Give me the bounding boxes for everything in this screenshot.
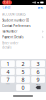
staticText: 6 xyxy=(37,68,40,75)
button[interactable]: 2 xyxy=(16,60,30,67)
staticText: Tax Number xyxy=(2,30,17,33)
staticText: GHI xyxy=(7,75,9,77)
staticText: MNO xyxy=(37,75,40,77)
button[interactable]: 3 xyxy=(31,60,45,67)
button[interactable]: 5 xyxy=(16,68,30,75)
button[interactable]: Save xyxy=(36,5,45,10)
staticText: Enter order xyxy=(2,41,18,45)
staticText: DEF xyxy=(37,67,40,69)
button[interactable]: Contact Preferences xyxy=(0,23,46,29)
button[interactable]: 4 xyxy=(1,68,15,75)
staticText: Save xyxy=(38,6,44,9)
staticText: JKL xyxy=(22,75,24,77)
staticText: 9:41 xyxy=(4,1,11,4)
button[interactable]: Payment Details xyxy=(0,34,46,40)
button[interactable]: 6 xyxy=(31,68,45,75)
staticText: 8 xyxy=(21,76,24,83)
staticText: 9 xyxy=(37,76,40,83)
staticText: Student number ID xyxy=(2,19,29,22)
button[interactable]: 0 xyxy=(16,84,30,91)
staticText: 4 xyxy=(6,68,9,75)
button[interactable]: Cancel xyxy=(1,5,13,10)
button[interactable]: Student number ID xyxy=(0,17,46,23)
staticText: details xyxy=(2,46,11,49)
staticText: WXYZ xyxy=(36,83,40,85)
staticText: Contact Preferences xyxy=(2,24,30,28)
staticText: Cancel xyxy=(2,6,11,9)
staticText: TUV xyxy=(21,83,24,85)
staticText: 5 xyxy=(21,68,24,75)
staticText: 3 xyxy=(37,60,40,67)
button[interactable]: Tax Number xyxy=(0,29,46,34)
button[interactable]: 8 xyxy=(16,76,30,83)
staticText: 2 xyxy=(21,60,24,67)
staticText: PQRS xyxy=(6,83,10,85)
staticText: 1 xyxy=(6,60,9,67)
button[interactable]: Delete xyxy=(31,84,45,91)
staticText: ACCOUNT DETAILS xyxy=(2,13,25,16)
button[interactable]: 9 xyxy=(31,76,45,83)
staticText: 7 xyxy=(6,76,9,83)
staticText: 0 xyxy=(21,84,24,91)
staticText: ABC xyxy=(21,67,24,69)
button[interactable]: 1 xyxy=(1,60,15,67)
staticText: Payment Details xyxy=(2,35,23,39)
button[interactable]: 7 xyxy=(1,76,15,83)
